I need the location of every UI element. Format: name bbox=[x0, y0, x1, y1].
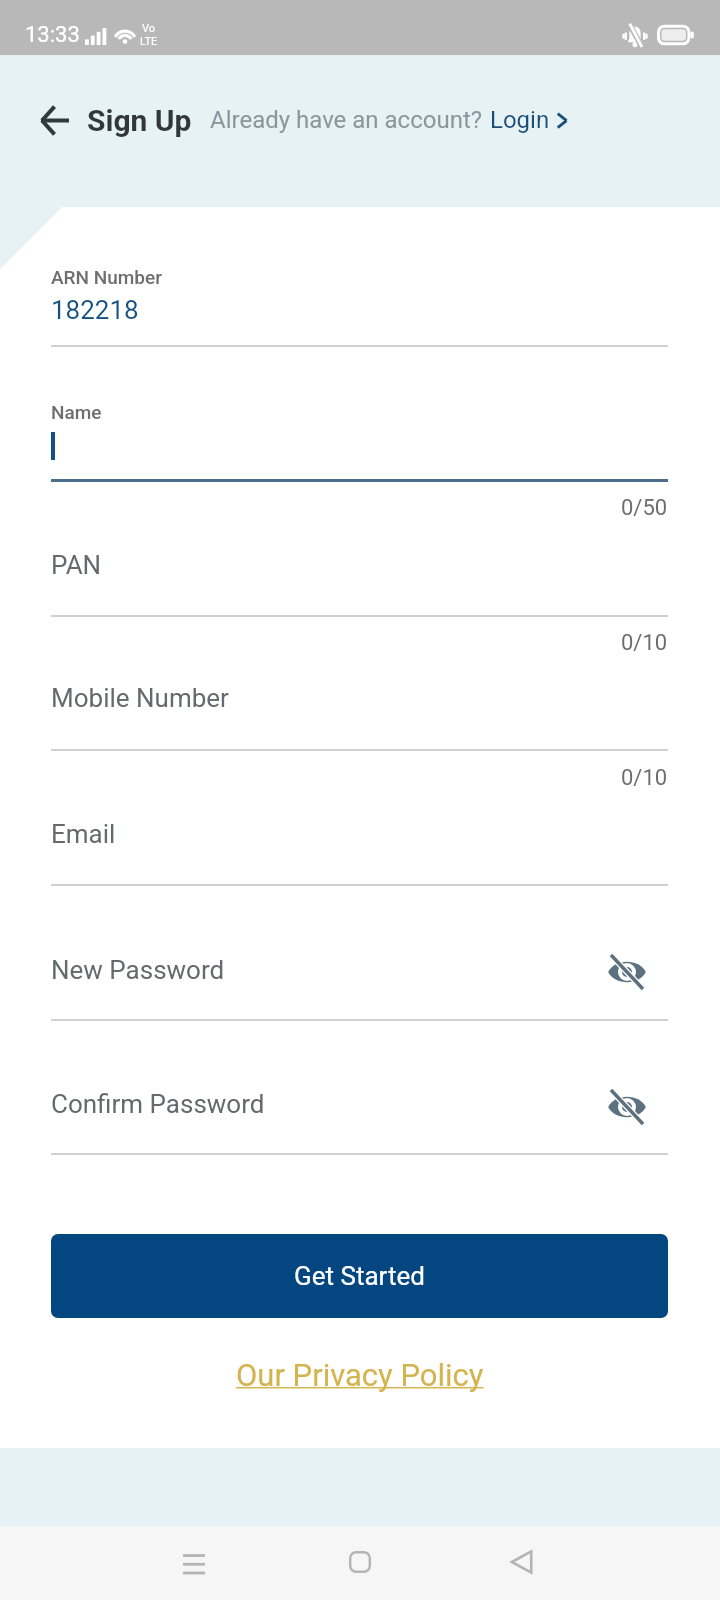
button[interactable]: New Password bbox=[0, 928, 720, 1020]
staticText: New Password bbox=[51, 955, 225, 985]
button[interactable]: Recents bbox=[159, 1528, 229, 1598]
button[interactable]: Confirm Password bbox=[0, 1063, 720, 1154]
staticText: Already have an account? bbox=[210, 106, 483, 134]
staticText: 182218 bbox=[51, 295, 139, 325]
staticText: ARN Number bbox=[51, 266, 162, 288]
button[interactable]: Mobile Number bbox=[0, 658, 720, 750]
staticText: Confirm Password bbox=[51, 1089, 265, 1119]
button[interactable]: Email bbox=[0, 793, 720, 885]
staticText: PAN bbox=[51, 550, 102, 580]
staticText: Mobile Number bbox=[51, 683, 229, 713]
button[interactable]: Get Started bbox=[51, 1234, 668, 1318]
button[interactable]: Back bbox=[27, 93, 81, 147]
staticText: Login bbox=[490, 106, 550, 134]
staticText: Get Started bbox=[294, 1261, 425, 1291]
button[interactable]: Back bbox=[487, 1527, 557, 1597]
button[interactable]: Our Privacy Policy bbox=[236, 1357, 484, 1393]
staticText: Sign Up bbox=[87, 103, 192, 138]
staticText: 0/10 bbox=[621, 765, 668, 791]
staticText: Email bbox=[51, 819, 116, 849]
staticText: Vo bbox=[142, 22, 156, 35]
staticText: 0/10 bbox=[621, 630, 668, 656]
staticText: 0/50 bbox=[621, 495, 668, 521]
button[interactable]: Login bbox=[490, 106, 574, 134]
staticText: LTE bbox=[140, 35, 158, 48]
button[interactable]: ARN Number bbox=[0, 254, 720, 346]
staticText: Name bbox=[51, 401, 102, 423]
button[interactable]: PAN bbox=[0, 524, 720, 616]
button[interactable]: Toggle password visibility bbox=[599, 944, 655, 1000]
button[interactable]: Home bbox=[325, 1527, 395, 1597]
staticText: 13:33 bbox=[25, 22, 80, 48]
button[interactable]: Name bbox=[0, 389, 720, 481]
button[interactable]: Toggle password visibility bbox=[599, 1079, 655, 1135]
